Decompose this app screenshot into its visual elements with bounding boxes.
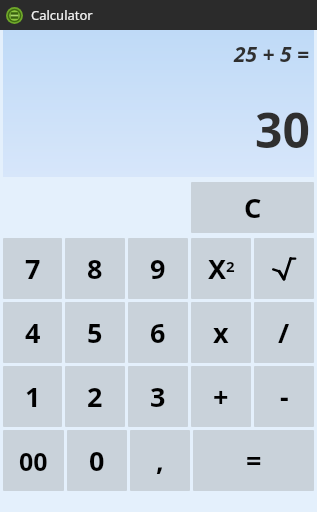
staticText: / xyxy=(278,314,290,351)
button[interactable]: 9 xyxy=(128,238,188,299)
staticText: 00 xyxy=(19,444,48,478)
staticText: 9 xyxy=(150,250,166,287)
staticText: Calculator xyxy=(31,6,93,24)
staticText: 5 xyxy=(87,314,103,351)
staticText: 25 + 5 = xyxy=(234,40,310,69)
staticText: x xyxy=(213,314,229,351)
button[interactable]: 4 xyxy=(3,302,62,363)
staticText: + xyxy=(213,378,229,415)
button[interactable]: 3 xyxy=(128,366,188,427)
staticText: 2 xyxy=(87,378,103,415)
staticText: - xyxy=(280,378,289,415)
button[interactable]: 00 xyxy=(3,430,64,491)
button[interactable]: , xyxy=(130,430,190,491)
button[interactable]: 0 xyxy=(67,430,127,491)
staticText: = xyxy=(246,442,262,479)
staticText: 7 xyxy=(25,250,41,287)
staticText: 4 xyxy=(25,314,41,351)
button[interactable]: / xyxy=(254,302,314,363)
button[interactable]: 8 xyxy=(65,238,125,299)
staticText: 30 xyxy=(255,97,310,162)
button[interactable]: 7 xyxy=(3,238,62,299)
staticText: 8 xyxy=(87,250,103,287)
button[interactable]: Square root xyxy=(254,238,314,299)
button[interactable]: = xyxy=(193,430,314,491)
button[interactable]: x xyxy=(191,302,251,363)
button[interactable]: C xyxy=(191,182,314,233)
button[interactable]: 5 xyxy=(65,302,125,363)
button[interactable]: + xyxy=(191,366,251,427)
button[interactable]: 2 xyxy=(65,366,125,427)
staticText: 6 xyxy=(150,314,166,351)
button[interactable]: 6 xyxy=(128,302,188,363)
button[interactable]: - xyxy=(254,366,314,427)
button[interactable]: X2 xyxy=(191,238,251,299)
staticText: X2 xyxy=(208,250,235,287)
button[interactable]: 1 xyxy=(3,366,62,427)
staticText: 1 xyxy=(25,378,41,415)
staticText: 3 xyxy=(150,378,166,415)
staticText: C xyxy=(244,189,262,226)
staticText: , xyxy=(156,442,164,479)
staticText: 0 xyxy=(89,442,105,479)
